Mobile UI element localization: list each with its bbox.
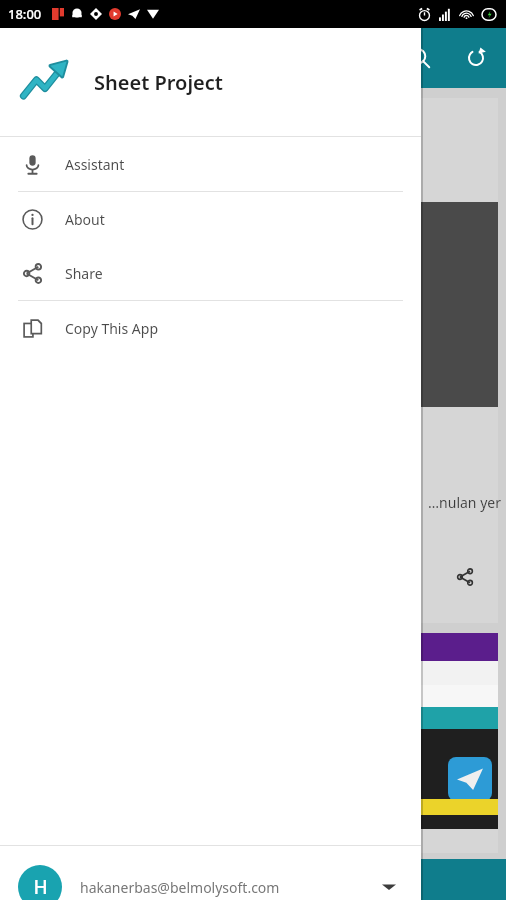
button[interactable]: Assistant	[0, 137, 421, 191]
staticText: …nulan yer	[428, 493, 501, 512]
button[interactable]: Show accounts	[369, 867, 409, 900]
staticText: Sheet Project	[94, 69, 223, 96]
staticText: hakanerbas@belmolysoft.com	[80, 878, 280, 897]
button[interactable]: About	[0, 192, 421, 246]
staticText: H	[33, 874, 48, 900]
staticText: Share	[65, 264, 103, 283]
button[interactable]: Copy This App	[0, 301, 421, 355]
button[interactable]: H	[0, 846, 421, 900]
staticText: 18:00	[8, 5, 42, 23]
button[interactable]	[8, 633, 498, 853]
button[interactable]: …nulan yer	[8, 98, 498, 623]
staticText: Copy This App	[65, 319, 158, 338]
button[interactable]: Refresh	[460, 42, 492, 74]
staticText: About	[65, 210, 105, 229]
button[interactable]: Sheet Project	[0, 28, 421, 136]
button[interactable]: Share	[0, 246, 421, 300]
button[interactable]: Share	[448, 560, 482, 594]
staticText: Assistant	[65, 155, 125, 174]
button[interactable]: Search	[404, 42, 436, 74]
